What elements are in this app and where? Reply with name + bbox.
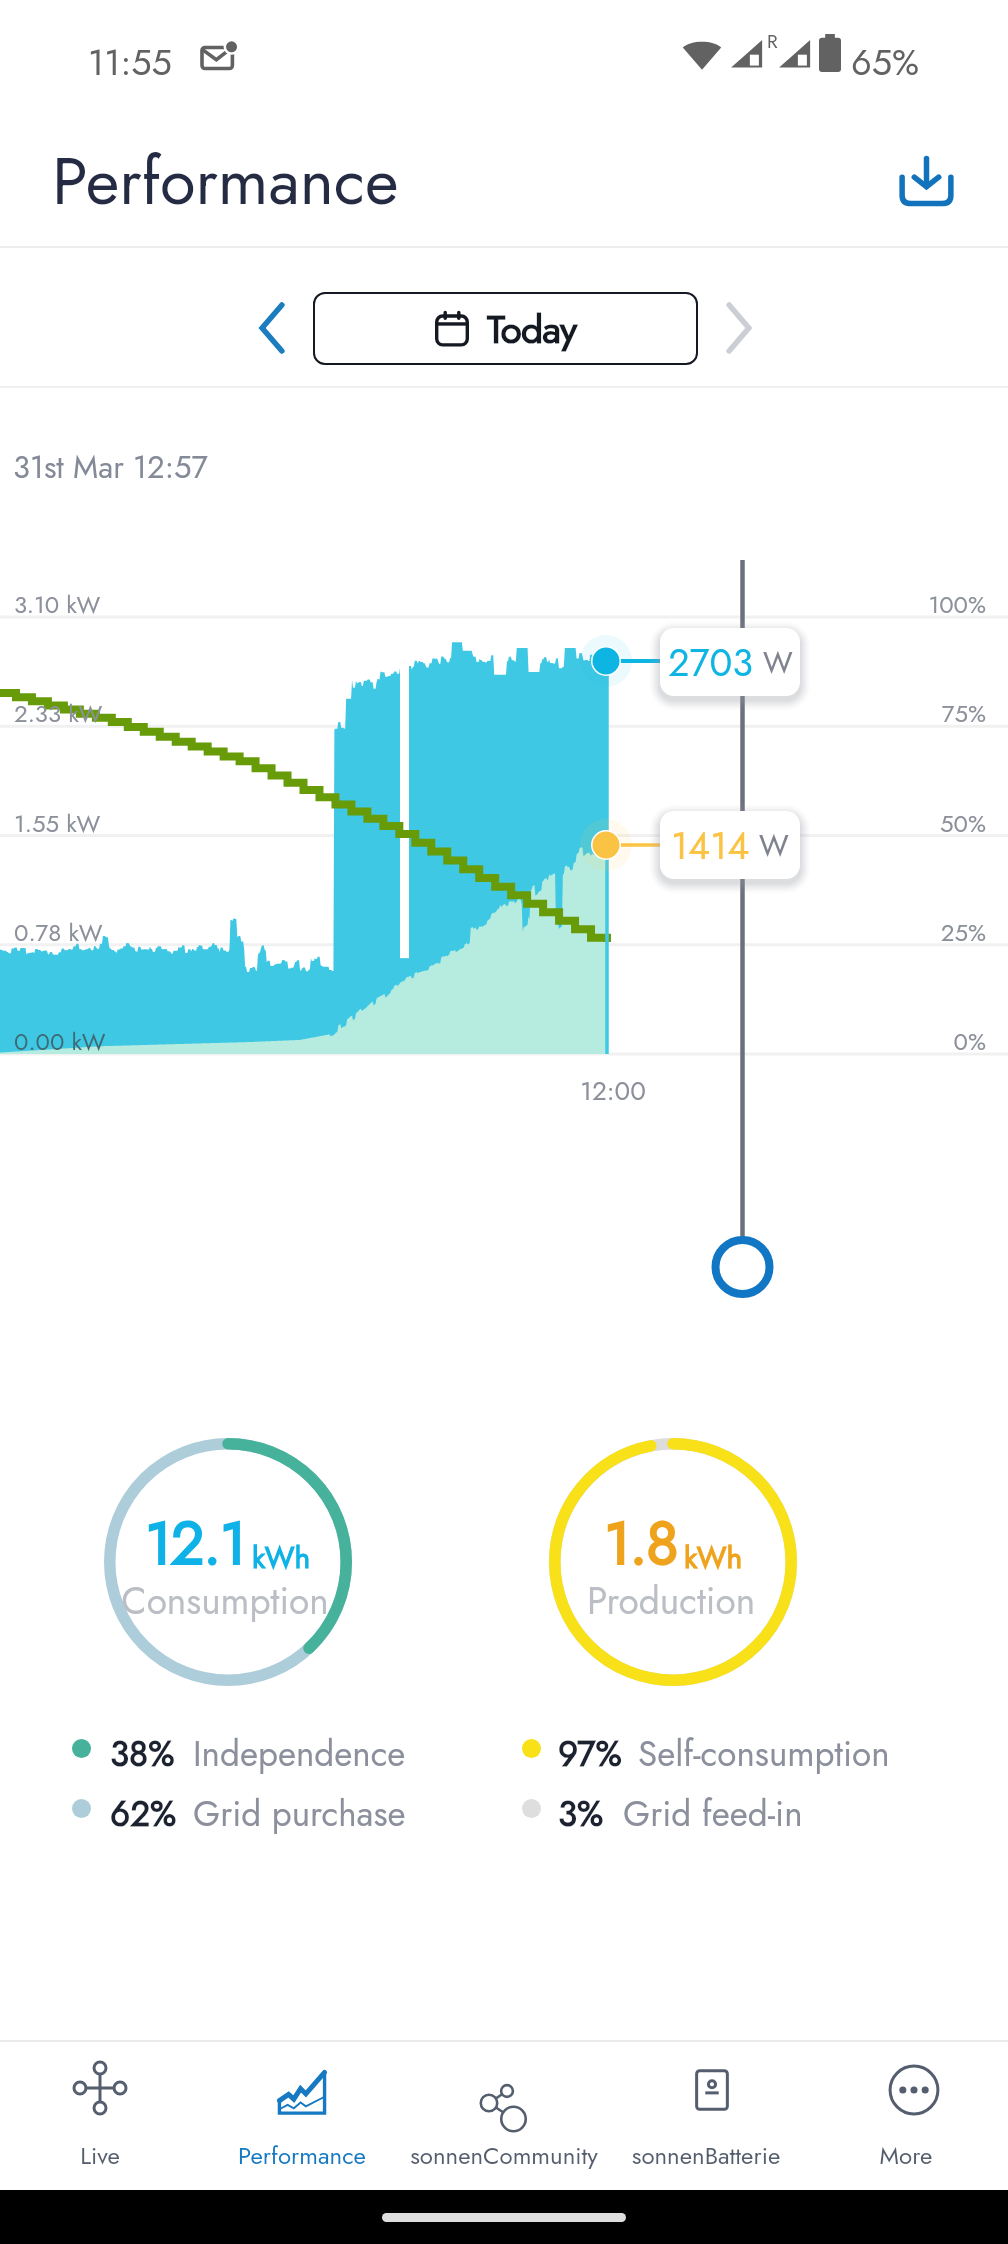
button[interactable] (834, 2042, 994, 2190)
staticText: 0.78 kW (14, 915, 103, 950)
button[interactable] (186, 2042, 418, 2190)
staticText: 12:00 (507, 1072, 719, 1110)
button[interactable]: 31st Mar 12:57 (0, 436, 1002, 558)
button[interactable]: Previous day (231, 293, 313, 363)
button[interactable] (14, 2042, 186, 2190)
staticText: 100% (806, 587, 986, 622)
staticText: 38% (110, 1729, 175, 1779)
staticText: Production (271, 1574, 1008, 1627)
staticText: 1414 (671, 818, 750, 873)
button[interactable] (590, 2042, 834, 2190)
staticText: 2.33 kW (14, 696, 103, 731)
staticText: Performance (52, 134, 399, 228)
staticText: Independence (193, 1729, 406, 1779)
staticText: kWh (684, 1536, 743, 1579)
staticText: More (506, 2138, 1008, 2173)
staticText: 65% (851, 36, 920, 88)
staticText: Today (487, 301, 577, 357)
staticText: 97% (558, 1729, 622, 1779)
button[interactable] (418, 2042, 590, 2190)
button[interactable]: Next day (698, 293, 780, 363)
staticText: W (759, 824, 789, 867)
staticText: Grid purchase (193, 1789, 406, 1839)
staticText: 62% (110, 1789, 177, 1839)
staticText: R (767, 28, 778, 55)
staticText: 0.00 kW (14, 1024, 106, 1059)
staticText: kWh (252, 1536, 311, 1579)
staticText: W (763, 641, 793, 684)
button[interactable]: Today (313, 292, 698, 365)
staticText: 12.1 (145, 1500, 246, 1587)
staticText: Consumption (0, 1574, 625, 1627)
staticText: 2703 (668, 635, 754, 690)
staticText: Live (0, 2138, 500, 2173)
staticText: Performance (0, 2138, 702, 2173)
button[interactable]: Download (878, 133, 974, 229)
staticText: 75% (806, 696, 986, 731)
staticText: sonnenCommunity (104, 2138, 904, 2173)
staticText: 50% (806, 806, 986, 841)
staticText: Self-consumption (638, 1729, 890, 1779)
staticText: Grid feed-in (623, 1789, 803, 1839)
staticText: 25% (806, 915, 986, 950)
staticText: 3.10 kW (14, 587, 101, 622)
staticText: 11:55 (88, 36, 172, 88)
staticText: 0% (806, 1024, 986, 1059)
staticText: sonnenBatterie (306, 2138, 1008, 2173)
staticText: 3% (558, 1789, 604, 1839)
staticText: 31st Mar 12:57 (13, 445, 208, 490)
staticText: 1.55 kW (14, 806, 101, 841)
staticText: 1.8 (604, 1500, 678, 1587)
